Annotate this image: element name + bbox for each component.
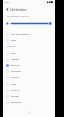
button[interactable]: Zig-zig-zig <box>3 99 55 105</box>
button[interactable]: Medium <box>3 56 55 62</box>
staticText: Call vibration <box>10 8 27 12</box>
button[interactable]: Silent <box>3 37 55 43</box>
staticText: Silent <box>11 39 17 42</box>
button[interactable]: Basic call <box>3 62 55 68</box>
button[interactable]: Back <box>4 6 11 13</box>
button[interactable]: Waltz <box>3 81 55 87</box>
button[interactable]: Sync with ringtone <box>3 31 55 37</box>
staticText: Heartbeat <box>11 70 21 73</box>
button[interactable]: Heartbeat <box>3 68 55 74</box>
staticText: Sync with ringtone <box>11 33 29 36</box>
staticText: Zig-zig-zig <box>11 101 21 104</box>
staticText: 9:41 <box>5 1 10 4</box>
staticText: Tic-tic-tic <box>11 89 20 92</box>
staticText: Basic call <box>11 64 20 67</box>
button[interactable]: Short <box>3 50 55 56</box>
staticText: Waltz <box>11 83 17 86</box>
staticText: Medium <box>11 58 19 61</box>
staticText: Off beat <box>11 95 19 98</box>
staticText: Short <box>11 52 17 55</box>
staticText: Ticktock <box>11 76 19 79</box>
staticText: Patterns <box>7 45 16 48</box>
button[interactable]: Off beat <box>3 93 55 99</box>
button[interactable]: Ticktock <box>3 74 55 80</box>
staticText: Call vibration intensity <box>7 15 29 18</box>
button[interactable]: Vibration intensity <box>3 20 55 27</box>
button[interactable]: Tic-tic-tic <box>3 87 55 93</box>
